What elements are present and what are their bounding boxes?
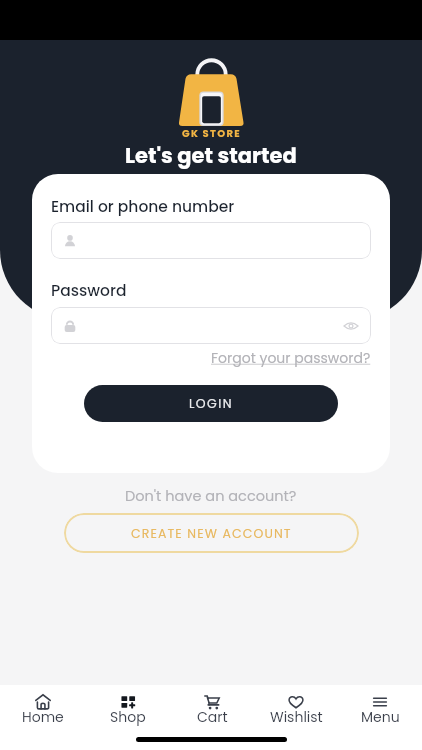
staticText: Password	[51, 280, 127, 302]
staticText: LOGIN	[189, 395, 233, 412]
button[interactable]: Password field	[51, 307, 371, 344]
button[interactable]: Email field	[51, 222, 371, 259]
button[interactable]: Wishlist	[254, 685, 338, 750]
staticText: Let's get started	[125, 141, 297, 170]
button[interactable]: Home	[0, 685, 85, 750]
button[interactable]: CREATE NEW ACCOUNT	[64, 513, 359, 553]
staticText: Wishlist	[270, 707, 323, 727]
staticText: GK STORE	[182, 126, 241, 140]
staticText: Home	[22, 707, 64, 727]
staticText: Menu	[361, 707, 400, 727]
button[interactable]: LOGIN	[84, 385, 338, 422]
staticText: Email or phone number	[51, 196, 235, 218]
staticText: Cart	[197, 707, 228, 727]
button[interactable]: Shop	[85, 685, 170, 750]
button[interactable]: Menu	[338, 685, 422, 750]
button[interactable]: Forgot your password?	[211, 348, 371, 368]
button[interactable]: Don't have an account?	[125, 486, 297, 506]
button[interactable]: Cart	[170, 685, 254, 750]
staticText: CREATE NEW ACCOUNT	[131, 525, 292, 542]
staticText: Shop	[110, 707, 146, 727]
